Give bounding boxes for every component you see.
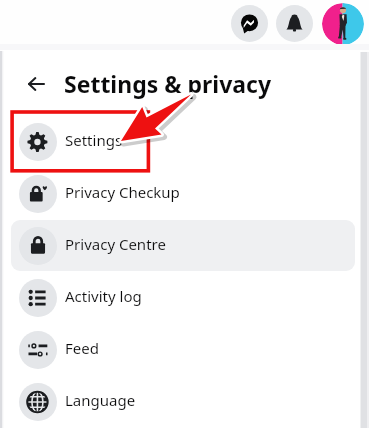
button[interactable]: Activity log bbox=[11, 272, 355, 323]
staticText: Feed bbox=[65, 338, 99, 358]
staticText: Privacy Centre bbox=[65, 234, 166, 254]
staticText: Activity log bbox=[65, 286, 142, 306]
staticText: Settings & privacy bbox=[64, 68, 272, 99]
button[interactable]: Back bbox=[26, 74, 46, 94]
staticText: Language bbox=[65, 390, 136, 410]
button[interactable]: Language bbox=[11, 376, 355, 427]
button[interactable]: Settings bbox=[11, 116, 355, 167]
button[interactable]: Privacy Checkup bbox=[11, 168, 355, 219]
staticText: Settings bbox=[65, 130, 123, 150]
button[interactable]: Feed bbox=[11, 324, 355, 375]
staticText: Privacy Checkup bbox=[65, 182, 180, 202]
button[interactable]: Privacy Centre bbox=[11, 220, 355, 271]
button[interactable]: Messenger bbox=[231, 5, 268, 42]
button[interactable]: Profile bbox=[322, 3, 364, 45]
button[interactable]: Notifications bbox=[276, 5, 313, 42]
